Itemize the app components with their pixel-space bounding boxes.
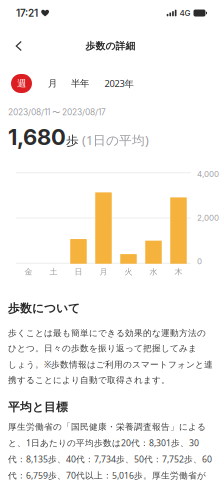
staticText: 月 <box>48 78 57 89</box>
staticText: 歩数の詳細 <box>85 40 135 52</box>
staticText: 水 <box>149 267 157 277</box>
staticText: 平均と目標 <box>8 400 68 414</box>
staticText: 17:21 <box>16 7 38 19</box>
staticText: 週 <box>17 78 26 89</box>
staticText: 1,680 <box>8 124 66 150</box>
staticText: 歩数について <box>8 301 80 316</box>
button[interactable]: 半年 <box>71 74 89 93</box>
staticText: 土 <box>49 267 57 277</box>
staticText: 歩 <box>66 133 79 149</box>
staticText: 2023/08/11 〜 2023/08/17 <box>8 107 106 118</box>
staticText: 2023年 <box>104 77 133 90</box>
staticText: 月 <box>99 267 107 277</box>
staticText: 4G <box>179 8 190 18</box>
staticText: 厚生労働省の「国民健康・栄養調査報告」によると、1日あたりの平均歩数は20代：8… <box>8 421 212 480</box>
staticText: 半年 <box>71 78 89 89</box>
staticText: 日 <box>74 267 82 277</box>
staticText: 火 <box>124 267 132 277</box>
button[interactable]: 月 <box>46 74 59 93</box>
staticText: 2,000 <box>197 213 219 223</box>
button[interactable]: 2023年 <box>103 74 135 93</box>
staticText: 4,000 <box>197 169 219 179</box>
staticText: 木 <box>174 267 182 277</box>
staticText: (1日の平均) <box>79 131 149 149</box>
staticText: 歩くことは最も簡単にできる効果的な運動方法のひとつ。日々の歩数を振り返って把握し… <box>8 328 213 386</box>
button[interactable]: 週 <box>11 74 32 93</box>
button[interactable]: 戻る <box>6 34 32 58</box>
staticText: 0 <box>197 257 202 266</box>
staticText: 金 <box>24 267 32 277</box>
